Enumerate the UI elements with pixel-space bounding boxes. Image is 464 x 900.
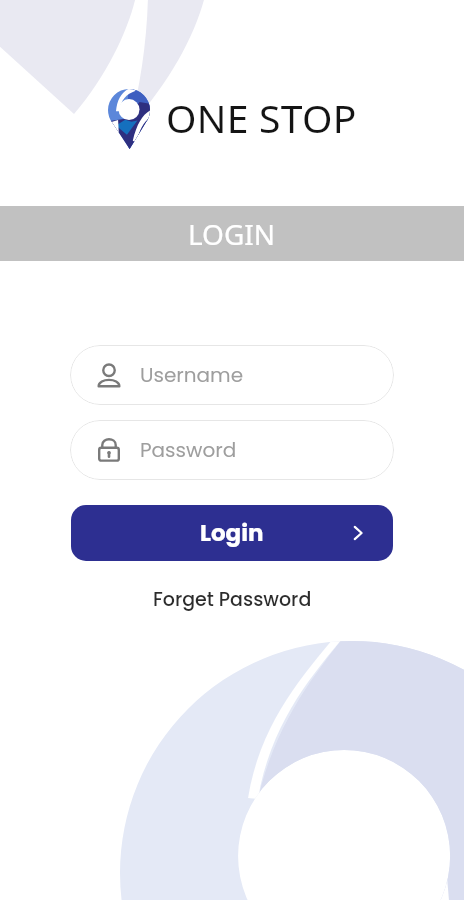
button[interactable]: Forget Password [153,586,312,613]
button[interactable]: Login [71,505,393,561]
button[interactable]: Password [70,420,394,480]
button[interactable]: Username [70,345,394,405]
staticText: Login [200,517,264,549]
staticText: Username [140,361,244,389]
staticText: Password [140,436,237,464]
staticText: ONE STOP [166,91,357,144]
staticText: LOGIN [188,215,276,253]
